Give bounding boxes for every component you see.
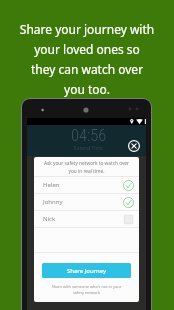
staticText: Share your journey with your loved ones … bbox=[0, 21, 174, 97]
button[interactable]: Share with someone who's not in your saf… bbox=[38, 284, 135, 295]
staticText: Share Journey bbox=[67, 267, 107, 275]
button[interactable]: Johnny bbox=[34, 194, 139, 210]
button[interactable]: Nick bbox=[34, 211, 139, 227]
staticText: Johnny bbox=[43, 198, 123, 206]
staticText: Helen bbox=[43, 181, 123, 189]
button[interactable]: Helen bbox=[34, 177, 139, 193]
staticText: Extend Time bbox=[74, 145, 104, 152]
button[interactable]: Close bbox=[128, 140, 140, 152]
staticText: 04:56 bbox=[71, 126, 107, 145]
staticText: Ask your safety network to watch over yo… bbox=[36, 160, 137, 174]
staticText: Nick bbox=[43, 215, 123, 223]
button[interactable]: Share Journey bbox=[42, 263, 131, 278]
